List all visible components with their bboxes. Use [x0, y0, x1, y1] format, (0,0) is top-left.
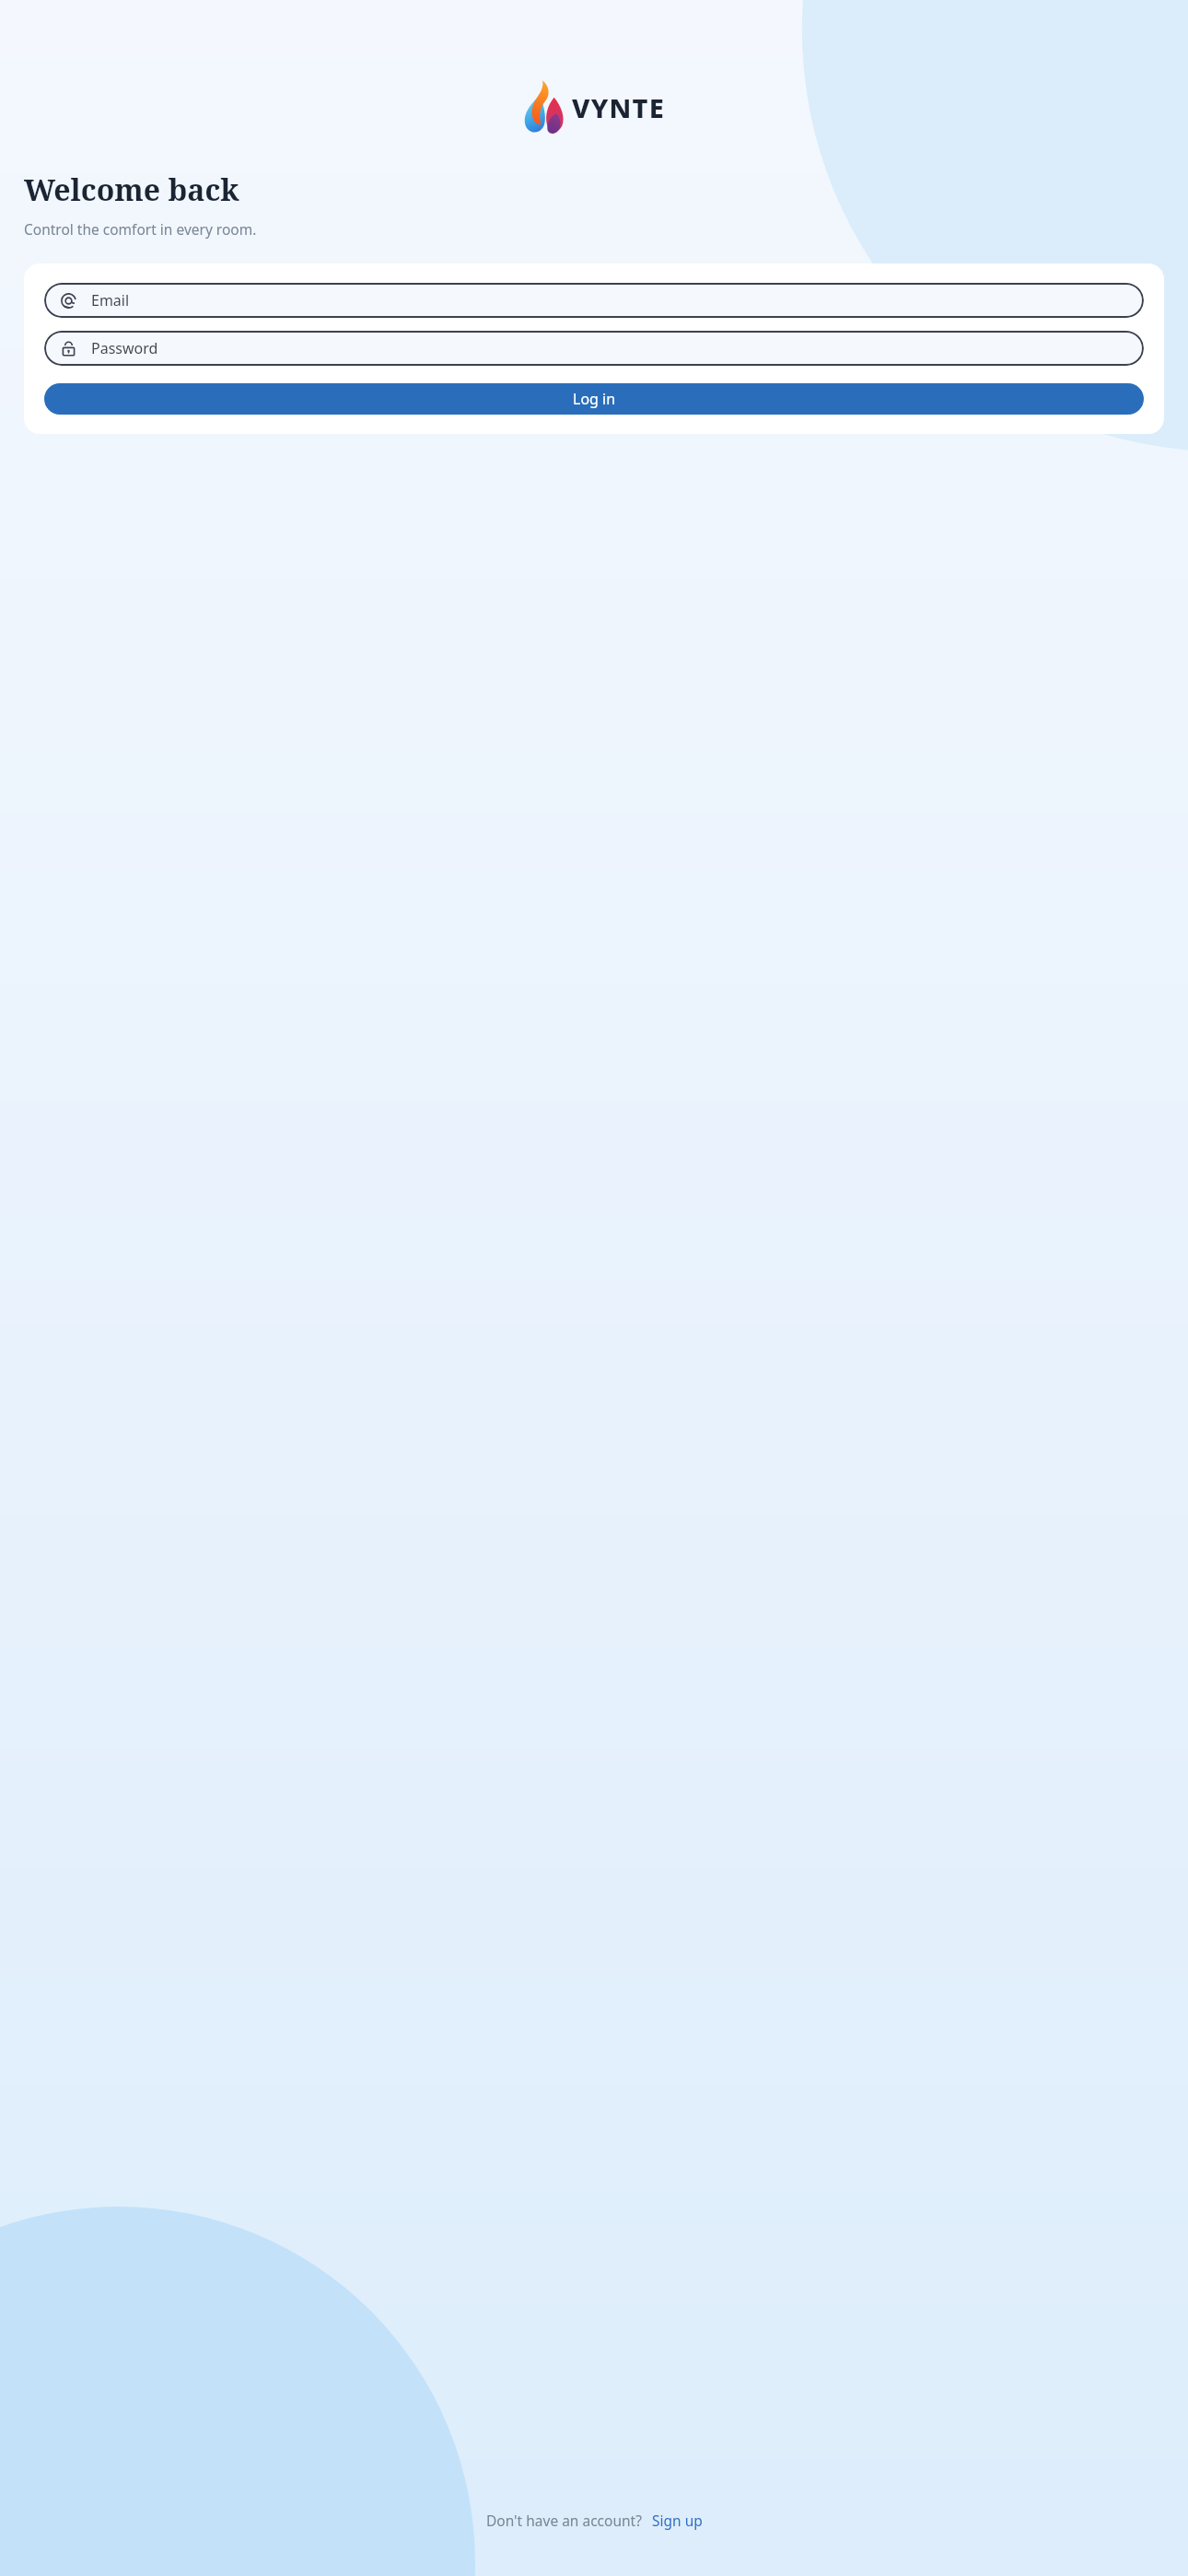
button[interactable]: Password — [44, 331, 1144, 366]
staticText: VYNTE — [572, 89, 665, 125]
button[interactable]: Log in — [44, 383, 1144, 415]
staticText: Don't have an account? — [486, 2511, 642, 2530]
staticText: Control the comfort in every room. — [24, 219, 257, 239]
staticText: Email — [91, 290, 130, 310]
staticText: Sign up — [652, 2511, 703, 2530]
staticText: Welcome back — [24, 170, 239, 210]
button[interactable]: Email — [44, 283, 1144, 318]
button[interactable]: Sign up — [652, 2511, 703, 2530]
staticText: Password — [91, 338, 158, 358]
staticText: Log in — [573, 389, 616, 409]
